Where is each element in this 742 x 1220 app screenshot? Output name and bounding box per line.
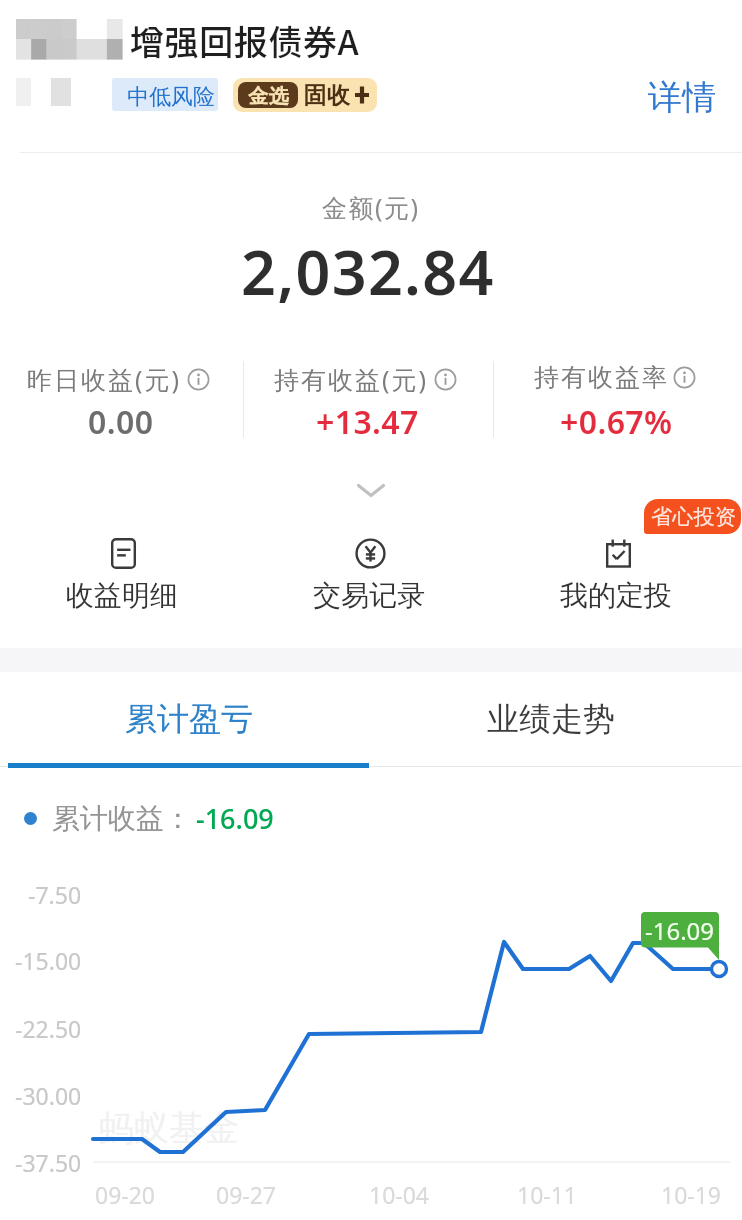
button[interactable]: 业绩走势 [365,675,736,763]
button[interactable]: 交易记录 [247,528,494,618]
staticText: 业绩走势 [487,699,615,739]
button[interactable]: 收益明细 [0,528,247,618]
staticText: 详情 [648,76,716,119]
staticText: +13.47 [316,400,419,444]
staticText: 0.00 [88,400,154,444]
staticText: -37.50 [15,1147,82,1178]
button[interactable]: 中低风险 [112,78,218,111]
staticText: -16.09 [645,914,715,947]
staticText: 09-20 [95,1179,156,1210]
staticText: 增强回报债券A [130,16,360,65]
button[interactable]: 持有收益(元) [243,353,493,445]
staticText: 持有收益率 [533,362,668,393]
staticText: 10-19 [661,1179,722,1210]
staticText: 中低风险 [127,83,215,111]
button[interactable]: 金选 [233,78,377,112]
button[interactable]: Expand details [349,476,393,505]
button[interactable]: 持有收益率 [493,353,742,445]
staticText: 昨日收益(元) [27,362,182,396]
staticText: 交易记录 [313,578,425,613]
button[interactable]: 累计盈亏 [0,675,378,763]
staticText: 固收 [303,81,350,110]
staticText: 累计盈亏 [125,699,253,739]
staticText: 我的定投 [560,578,672,613]
button[interactable]: 详情 [636,72,728,123]
staticText: -30.00 [15,1080,82,1111]
staticText: 持有收益(元) [274,362,429,396]
staticText: -15.00 [15,945,82,976]
staticText: 10-11 [517,1179,578,1210]
staticText: +0.67% [560,400,673,444]
staticText: 金选 [248,84,289,106]
button[interactable]: 我的定投 [494,528,742,618]
staticText: 金额(元) [322,190,420,224]
button[interactable]: 省心投资 [644,499,741,534]
staticText: 09-27 [216,1179,277,1210]
staticText: -7.50 [28,879,82,910]
staticText: 10-04 [369,1179,430,1210]
staticText: 累计收益： [52,801,192,836]
staticText: 2,032.84 [241,230,495,313]
staticText: 收益明细 [66,578,178,613]
staticText: -16.09 [196,800,274,837]
button[interactable]: 昨日收益(元) [0,353,243,445]
staticText: -22.50 [15,1013,82,1044]
staticText: 省心投资 [651,504,737,530]
staticText: 蚂蚁基金 [99,1106,239,1150]
